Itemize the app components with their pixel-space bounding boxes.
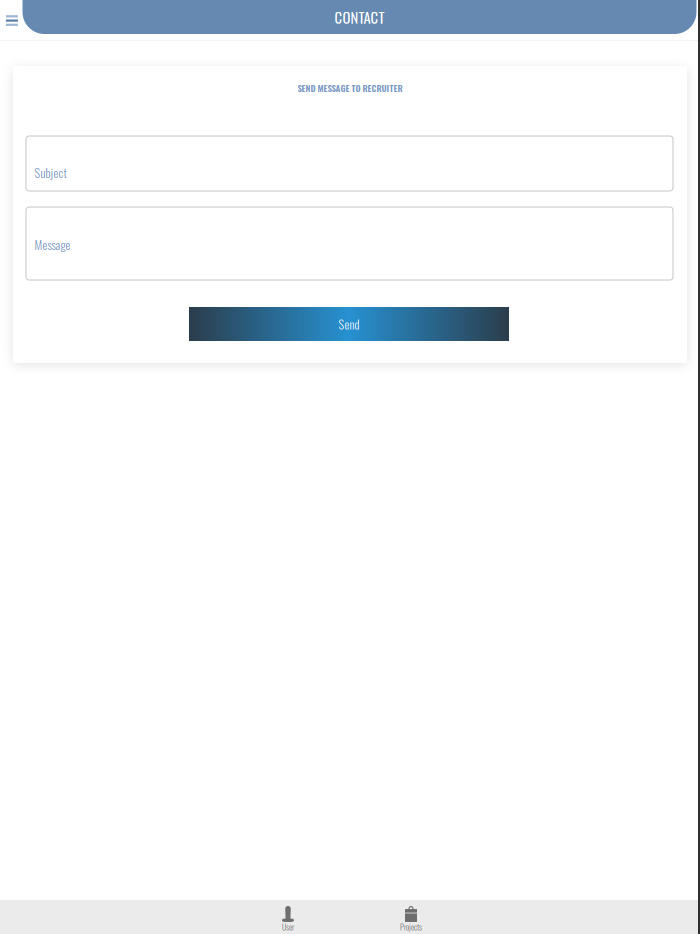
staticText: Projects — [400, 921, 422, 933]
button[interactable]: Menu — [3, 12, 21, 38]
staticText: CONTACT — [334, 6, 384, 28]
button[interactable]: Send — [189, 307, 509, 341]
staticText: Subject — [34, 164, 66, 181]
staticText: SEND MESSAGE TO RECRUITER — [297, 82, 402, 94]
button[interactable]: Message — [26, 207, 673, 280]
button[interactable]: Projects — [380, 900, 442, 934]
button[interactable]: Subject — [26, 136, 673, 191]
button[interactable]: User — [257, 900, 319, 934]
button[interactable]: CONTACT — [22, 0, 696, 34]
staticText: Message — [34, 236, 70, 253]
staticText: User — [282, 921, 294, 933]
staticText: Send — [338, 315, 359, 333]
